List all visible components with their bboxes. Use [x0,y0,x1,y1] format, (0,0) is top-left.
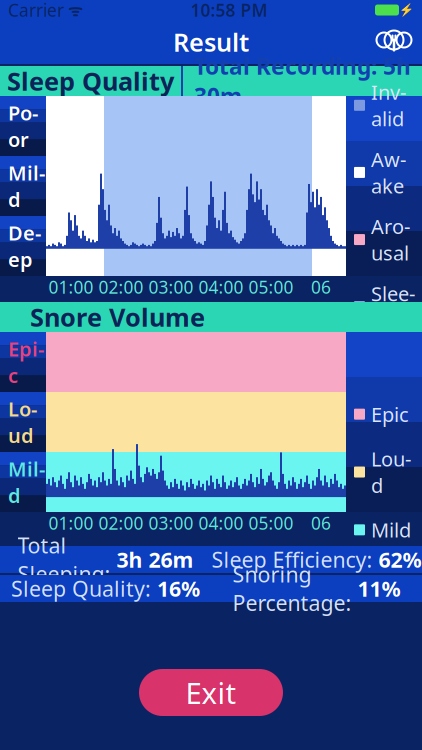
staticText: Epic [8,335,44,388]
staticText: Awake [371,146,406,199]
staticText: 02:00 [98,275,143,298]
staticText: ᯤ [64,0,83,21]
staticText: 01:00 [48,275,93,298]
staticText: Invalid [371,79,406,132]
staticText: Total Sleeping: [17,531,116,588]
staticText: Mild [8,455,45,508]
staticText: 04:00 [198,275,243,298]
staticText: Poor [8,99,38,152]
staticText: Arousal [371,213,410,266]
staticText: Exit [185,673,236,712]
staticText: 01:00 [48,511,93,534]
staticText: 03:00 [148,511,193,534]
staticText: Epic [371,401,409,427]
button[interactable]: Upload [372,20,416,64]
staticText: Sleep Quality: [11,574,157,603]
staticText: 11% [357,574,400,603]
staticText: Loud [371,445,411,498]
staticText: 62% [378,545,421,574]
staticText: Mild [371,517,411,543]
staticText: 16% [157,574,200,603]
staticText: Deep [8,219,41,272]
staticText: Result [173,25,249,59]
staticText: 02:00 [98,511,143,534]
staticText: 06 [311,275,331,298]
staticText: 03:00 [148,275,193,298]
staticText: 05:00 [248,275,293,298]
staticText: Carrier [8,0,64,21]
staticText: 06 [311,511,331,534]
staticText: 04:00 [198,511,243,534]
staticText: 10:58 PM [190,0,267,21]
staticText: Mild [8,159,45,212]
staticText: Sleep Efficiency: [211,545,378,574]
staticText: Sleep Quality [7,64,174,98]
staticText: ⚡ [399,3,414,17]
staticText: Loud [8,395,37,448]
staticText: Snoring Percentage: [232,560,357,617]
staticText: Sleep [371,280,415,333]
staticText: Snore Volume [30,300,205,334]
staticText: Total Recording: 5h 30m [194,51,411,111]
staticText: 3h 26m [116,545,193,574]
staticText: 05:00 [248,511,293,534]
button[interactable]: Exit [139,669,283,716]
